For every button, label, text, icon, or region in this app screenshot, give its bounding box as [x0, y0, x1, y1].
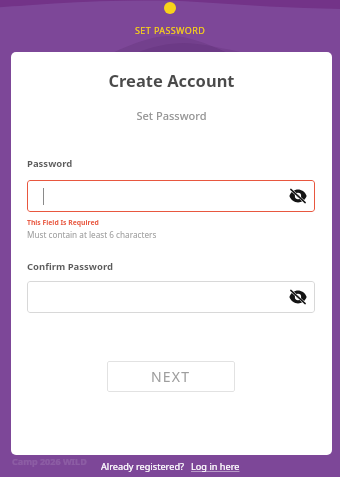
- button[interactable]: Show password: [27, 180, 315, 212]
- staticText: Set Password: [11, 108, 332, 123]
- button[interactable]: Show confirm password: [27, 281, 315, 313]
- staticText: This Field Is Required: [27, 218, 99, 227]
- button[interactable]: Show confirm password: [289, 288, 307, 306]
- button[interactable]: Log in here: [191, 460, 240, 473]
- staticText: Already registered?: [101, 460, 185, 473]
- staticText: Password: [27, 157, 73, 170]
- staticText: Must contain at least 6 characters: [27, 229, 157, 240]
- staticText: Camp 2026 WILD: [12, 455, 87, 467]
- staticText: Create Account: [11, 69, 332, 91]
- staticText: NEXT: [151, 367, 191, 386]
- staticText: SET PASSWORD: [135, 24, 206, 36]
- button[interactable]: NEXT: [107, 361, 235, 392]
- button[interactable]: Show password: [289, 187, 307, 205]
- staticText: Confirm Password: [27, 260, 113, 273]
- staticText: Log in here: [191, 460, 240, 473]
